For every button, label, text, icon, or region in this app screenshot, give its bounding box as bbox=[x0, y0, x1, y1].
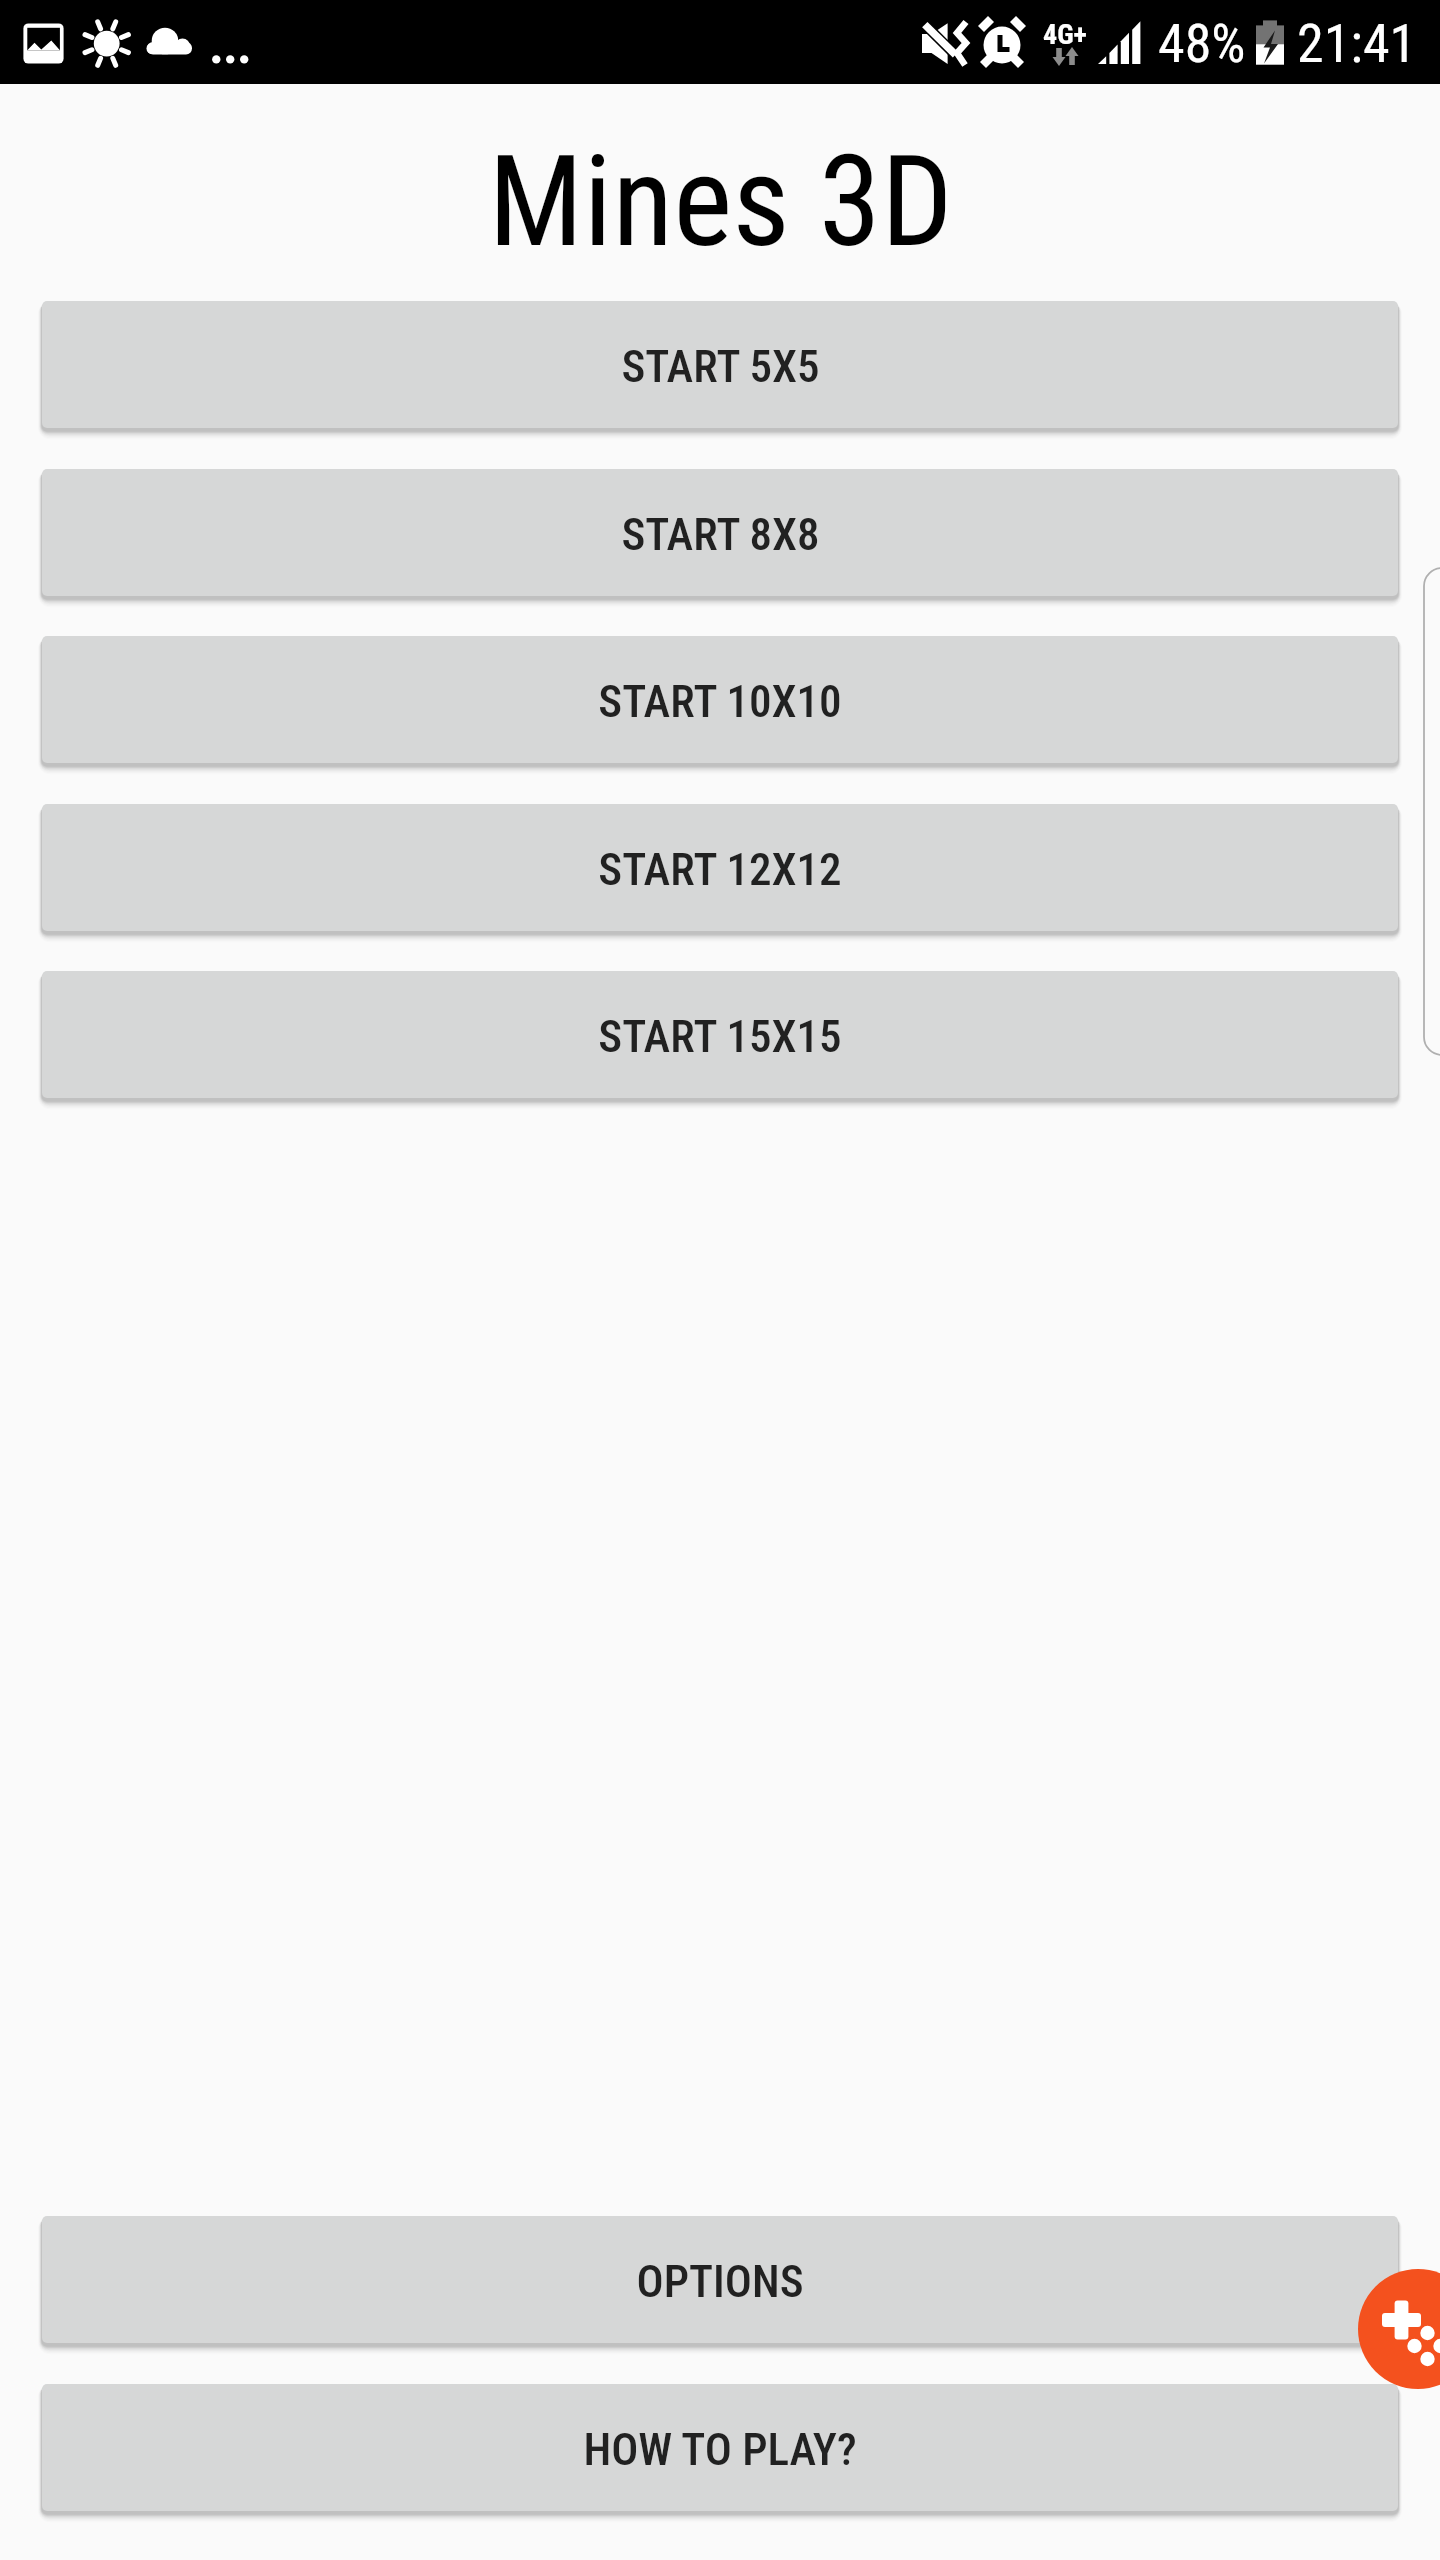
button[interactable]: START 5X5 bbox=[42, 301, 1398, 428]
staticText: START 12X12 bbox=[598, 843, 842, 896]
staticText: HOW TO PLAY? bbox=[583, 2423, 857, 2476]
staticText: START 10X10 bbox=[598, 675, 842, 728]
staticText: 4G+ bbox=[1043, 18, 1087, 51]
button[interactable]: HOW TO PLAY? bbox=[42, 2384, 1398, 2511]
staticText: START 8X8 bbox=[621, 508, 820, 561]
staticText: START 15X15 bbox=[598, 1010, 842, 1063]
button[interactable]: START 8X8 bbox=[42, 469, 1398, 596]
button[interactable]: OPTIONS bbox=[42, 2216, 1398, 2343]
staticText: Mines 3D bbox=[488, 128, 953, 268]
button[interactable]: Play Games bbox=[1358, 2269, 1440, 2389]
button[interactable]: START 12X12 bbox=[42, 804, 1398, 931]
staticText: 21:41 bbox=[1297, 12, 1417, 75]
staticText: 48% bbox=[1158, 12, 1246, 75]
button[interactable]: START 15X15 bbox=[42, 971, 1398, 1098]
staticText: OPTIONS bbox=[636, 2255, 804, 2308]
staticText: START 5X5 bbox=[621, 340, 820, 393]
button[interactable]: START 10X10 bbox=[42, 636, 1398, 763]
